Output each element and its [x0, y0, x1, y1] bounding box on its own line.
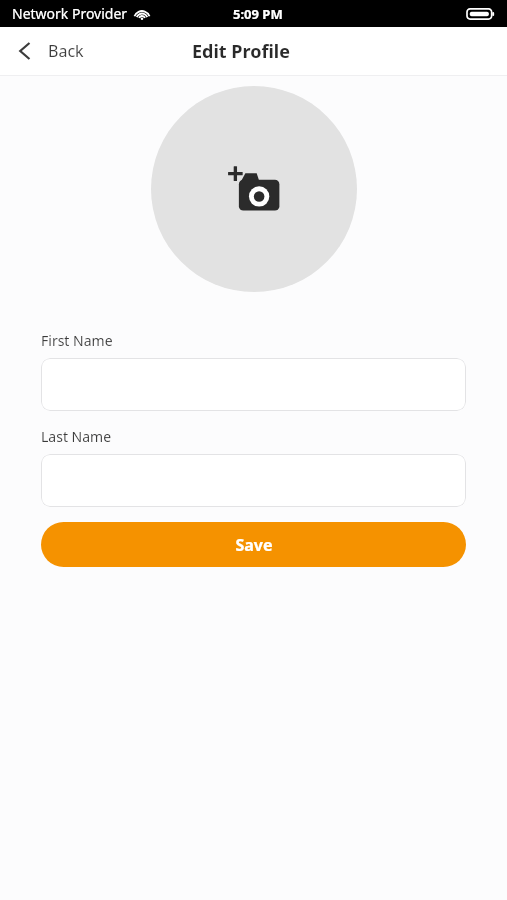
button[interactable]: [41, 454, 466, 507]
staticText: Edit Profile: [192, 39, 290, 64]
staticText: Last Name: [41, 427, 112, 446]
button[interactable]: Save: [41, 522, 466, 567]
staticText: Network Provider: [12, 4, 128, 23]
staticText: Save: [235, 534, 273, 556]
button[interactable]: Back: [0, 27, 100, 75]
staticText: Back: [48, 40, 84, 62]
staticText: 5:09 PM: [233, 5, 283, 23]
button[interactable]: [41, 358, 466, 411]
button[interactable]: Add profile photo: [151, 86, 357, 292]
staticText: First Name: [41, 331, 113, 350]
